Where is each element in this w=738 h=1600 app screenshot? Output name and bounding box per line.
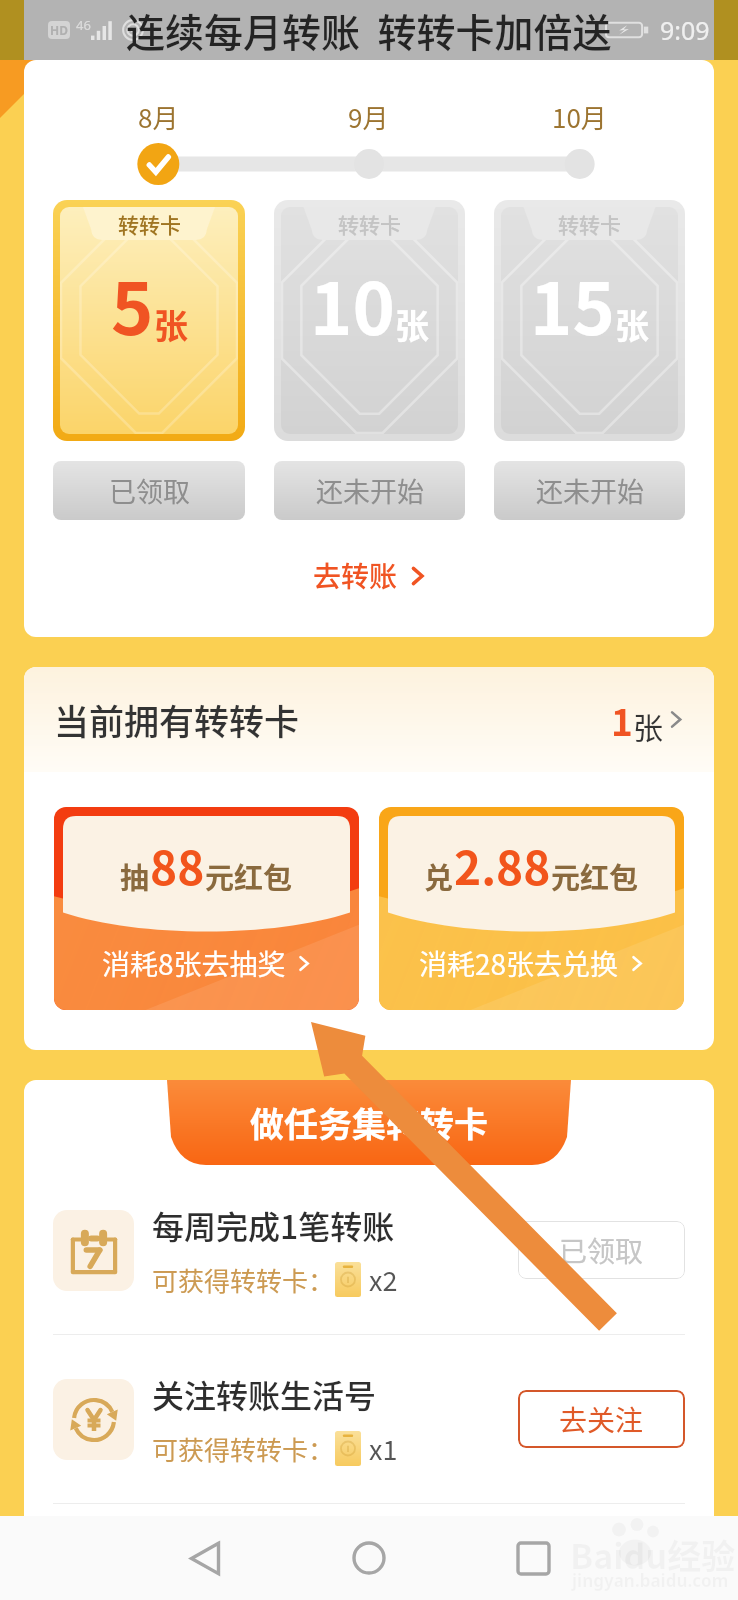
staticText: HD xyxy=(50,22,68,38)
button[interactable]: Recents xyxy=(501,1526,565,1590)
staticText: 1 xyxy=(611,693,633,747)
button[interactable]: 还未开始 xyxy=(274,461,465,520)
staticText: 元红包 xyxy=(205,855,293,897)
staticText: 元红包 xyxy=(551,855,639,897)
staticText: 当前拥有转转卡 xyxy=(54,694,300,745)
staticText: 张 xyxy=(633,704,663,747)
button[interactable]: Home xyxy=(337,1526,401,1590)
staticText: 2.88 xyxy=(454,832,551,899)
staticText: 10 xyxy=(310,251,395,355)
staticText: 可获得转转卡： xyxy=(152,1261,335,1299)
staticText: 转转卡 xyxy=(118,209,181,239)
staticText: 消耗28张去兑换 xyxy=(419,943,619,984)
staticText: 88 xyxy=(150,832,205,899)
staticText: 每周完成1笔转账 xyxy=(152,1202,395,1248)
staticText: 做任务集转转卡 xyxy=(250,1098,488,1147)
staticText: 抽 xyxy=(120,855,150,897)
button[interactable]: 转转卡 xyxy=(53,200,245,441)
button[interactable]: 兑 xyxy=(379,807,684,1010)
staticText: 张 xyxy=(154,300,188,349)
button[interactable]: 还未开始 xyxy=(494,461,685,520)
staticText: 转转卡 xyxy=(558,209,621,239)
staticText: 转转卡 xyxy=(338,209,401,239)
staticText: 9:09 xyxy=(660,13,710,47)
staticText: 张 xyxy=(615,300,649,349)
staticText: 去关注 xyxy=(559,1399,644,1440)
staticText: 去转账 xyxy=(313,555,398,596)
staticText: 15 xyxy=(530,251,615,355)
staticText: 9月 xyxy=(348,98,389,136)
button[interactable]: 已领取 xyxy=(53,461,245,520)
button[interactable]: 抽 xyxy=(54,807,359,1010)
staticText: 张 xyxy=(395,300,429,349)
staticText: Baidu经验 xyxy=(570,1530,736,1579)
staticText: 5 xyxy=(111,251,154,355)
staticText: 46 xyxy=(76,16,91,34)
staticText: x2 xyxy=(369,1260,398,1299)
button[interactable]: 转转卡 xyxy=(274,200,465,441)
staticText: 8月 xyxy=(138,98,179,136)
staticText: 已领取 xyxy=(559,1230,644,1271)
staticText: 兑 xyxy=(424,855,454,897)
staticText: x1 xyxy=(369,1429,398,1468)
staticText: 10月 xyxy=(552,98,607,136)
staticText: 关注转账生活号 xyxy=(152,1371,377,1417)
staticText: jingyan.baidu.com xyxy=(572,1569,729,1592)
button[interactable]: 去关注 xyxy=(518,1390,685,1448)
staticText: 连续每月转账 转转卡加倍送 xyxy=(126,2,612,58)
staticText: 消耗8张去抽奖 xyxy=(102,943,286,984)
button[interactable]: 去转账 xyxy=(24,555,714,596)
button[interactable]: 已领取 xyxy=(518,1221,685,1279)
button[interactable]: Back xyxy=(173,1526,237,1590)
staticText: 还未开始 xyxy=(536,471,644,510)
button[interactable]: 转转卡 xyxy=(494,200,685,441)
staticText: 还未开始 xyxy=(316,471,424,510)
button[interactable]: 当前拥有转转卡 xyxy=(54,667,684,772)
staticText: 可获得转转卡： xyxy=(152,1430,335,1468)
staticText: 已领取 xyxy=(109,471,190,510)
